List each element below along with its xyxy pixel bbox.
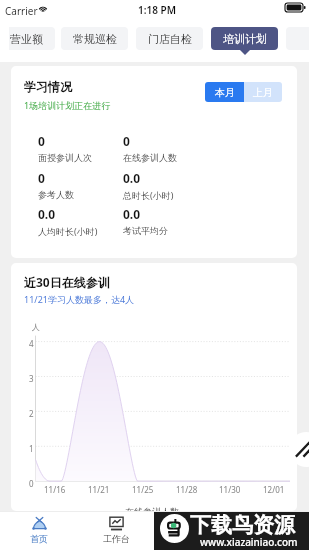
staticText: 在线参训人数 xyxy=(125,506,179,511)
staticText: 11/30 xyxy=(219,484,241,495)
staticText: 近30日在线参训 xyxy=(24,274,110,290)
staticText: 11/25 xyxy=(132,484,154,495)
staticText: 11/16 xyxy=(44,484,66,495)
staticText: 12/01 xyxy=(263,484,285,495)
staticText: www.xiazainiao.com xyxy=(200,535,298,549)
staticText: 总时长(小时) xyxy=(123,189,174,201)
staticText: 消息 xyxy=(185,533,203,544)
staticText: 在线参训人数 xyxy=(123,152,177,163)
staticText: 营业额 xyxy=(10,32,43,46)
staticText: 1场培训计划正在进行 xyxy=(24,99,111,111)
staticText: 我的 xyxy=(262,533,280,544)
button[interactable]: 工作台 xyxy=(78,512,155,548)
staticText: 0 xyxy=(123,133,130,149)
staticText: 参考人数 xyxy=(38,189,74,200)
button[interactable]: 我的 xyxy=(232,512,309,548)
staticText: 学习情况 xyxy=(24,79,72,94)
staticText: 2 xyxy=(29,408,34,419)
staticText: 人均时长(小时) xyxy=(38,225,98,237)
staticText: 常规巡检 xyxy=(73,32,117,46)
staticText: 首页 xyxy=(30,533,48,544)
staticText: Carrier xyxy=(5,4,38,18)
staticText: 本月 xyxy=(215,86,235,99)
button[interactable]: 消息 xyxy=(155,512,232,548)
staticText: 培训计划 xyxy=(223,32,267,46)
staticText: 0 xyxy=(38,170,45,186)
staticText: 门店自检 xyxy=(148,32,192,46)
staticText: 0 xyxy=(38,133,45,149)
button[interactable]: 首页 xyxy=(0,512,78,548)
staticText: 11/28 xyxy=(176,484,198,495)
staticText: 0.0 xyxy=(123,170,141,186)
staticText: 考试平均分 xyxy=(123,225,168,236)
button[interactable]: 常规巡检 xyxy=(61,27,128,50)
staticText: 面授参训人次 xyxy=(38,152,92,163)
staticText: 4 xyxy=(29,338,34,349)
staticText: 0.0 xyxy=(123,206,141,222)
staticText: 0.0 xyxy=(38,206,56,222)
button[interactable]: Fullscreen xyxy=(289,432,309,467)
staticText: 下载鸟资源 xyxy=(190,512,295,538)
button[interactable]: 上月 xyxy=(244,82,282,102)
staticText: 1:18 PM xyxy=(138,3,176,17)
button[interactable]: 营业额 xyxy=(9,27,55,50)
staticText: 11/21学习人数最多，达4人 xyxy=(24,293,135,305)
staticText: 工作台 xyxy=(103,533,130,544)
staticText: 上月 xyxy=(253,86,273,99)
staticText: 0 xyxy=(29,478,34,489)
button[interactable]: 本月 xyxy=(205,82,244,102)
staticText: 3 xyxy=(29,373,34,384)
button[interactable]: 培训计划 xyxy=(211,27,278,50)
staticText: 11/21 xyxy=(88,484,110,495)
staticText: 人 xyxy=(32,322,40,332)
staticText: 1 xyxy=(29,443,34,454)
button[interactable]: 门店自检 xyxy=(136,27,203,50)
